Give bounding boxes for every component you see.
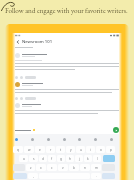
button[interactable]: d: [39, 155, 47, 162]
button[interactable]: l: [93, 155, 101, 162]
staticText: u: [80, 148, 82, 152]
button[interactable]: Keyboard tool: [63, 138, 66, 141]
staticText: e: [39, 148, 41, 152]
staticText: q: [17, 148, 19, 152]
staticText: l: [97, 157, 98, 161]
button[interactable]: i: [86, 146, 95, 153]
button[interactable]: Gboard: [15, 138, 18, 141]
button[interactable]: c: [47, 164, 57, 171]
staticText: v: [62, 166, 64, 170]
staticText: t: [60, 148, 62, 152]
button[interactable]: Keyboard tool: [110, 138, 113, 141]
staticText: d: [42, 157, 44, 161]
button[interactable]: h: [66, 155, 74, 162]
staticText: c: [51, 166, 53, 170]
button[interactable]: Reply: [20, 76, 23, 79]
button[interactable]: n: [80, 164, 90, 171]
staticText: ,: [33, 174, 34, 178]
button[interactable]: Send: [113, 127, 119, 133]
button[interactable]: ,: [28, 173, 38, 179]
button[interactable]: a: [19, 155, 28, 162]
staticText: o: [100, 148, 102, 152]
staticText: .: [96, 174, 97, 178]
button[interactable]: [15, 53, 119, 58]
button[interactable]: Replies: [25, 76, 36, 79]
button[interactable]: [15, 103, 119, 108]
button[interactable]: r: [46, 146, 55, 153]
staticText: w: [28, 148, 31, 152]
button[interactable]: Back: [15, 39, 21, 45]
staticText: z: [30, 166, 32, 170]
staticText: b: [73, 166, 75, 170]
button[interactable]: u: [76, 146, 85, 153]
button[interactable]: m: [91, 164, 101, 171]
button[interactable]: v: [58, 164, 68, 171]
staticText: a: [23, 157, 25, 161]
button[interactable]: Replies: [25, 97, 36, 100]
button[interactable]: j: [75, 155, 83, 162]
staticText: y: [70, 148, 72, 152]
button[interactable]: f: [48, 155, 56, 162]
button[interactable]: s: [29, 155, 38, 162]
staticText: k: [87, 157, 89, 161]
staticText: j: [79, 157, 80, 161]
button[interactable]: Reply: [20, 97, 23, 100]
staticText: g: [60, 157, 62, 161]
button[interactable]: Emoji: [102, 173, 115, 179]
button[interactable]: Keyboard tool: [47, 138, 50, 141]
staticText: r: [50, 148, 52, 152]
staticText: Newsroom 101: [22, 39, 53, 45]
button[interactable]: Symbols: [13, 173, 27, 179]
button[interactable]: Like: [15, 97, 18, 100]
button[interactable]: y: [66, 146, 75, 153]
staticText: f: [51, 157, 53, 161]
button[interactable]: k: [84, 155, 92, 162]
staticText: Follow and engage with your favorite wri…: [5, 6, 128, 15]
button[interactable]: e: [35, 146, 45, 153]
staticText: x: [40, 166, 42, 170]
button[interactable]: Enter: [103, 155, 115, 162]
button[interactable]: b: [69, 164, 79, 171]
staticText: n: [84, 166, 86, 170]
button[interactable]: Keyboard tool: [31, 138, 34, 141]
button[interactable]: Shift: [13, 164, 25, 171]
button[interactable]: q: [13, 146, 23, 153]
button[interactable]: z: [26, 164, 35, 171]
staticText: m: [95, 166, 98, 170]
staticText: h: [69, 157, 71, 161]
staticText: p: [110, 148, 112, 152]
button[interactable]: g: [57, 155, 65, 162]
button[interactable]: x: [36, 164, 46, 171]
button[interactable]: w: [24, 146, 34, 153]
button[interactable]: [15, 82, 119, 87]
button[interactable]: o: [96, 146, 105, 153]
button[interactable]: t: [56, 146, 65, 153]
staticText: s: [33, 157, 35, 161]
button[interactable]: Keyboard tool: [78, 138, 81, 141]
button[interactable]: Keyboard tool: [94, 138, 97, 141]
staticText: i: [90, 148, 91, 152]
button[interactable]: p: [106, 146, 115, 153]
button[interactable]: Like: [15, 76, 18, 79]
